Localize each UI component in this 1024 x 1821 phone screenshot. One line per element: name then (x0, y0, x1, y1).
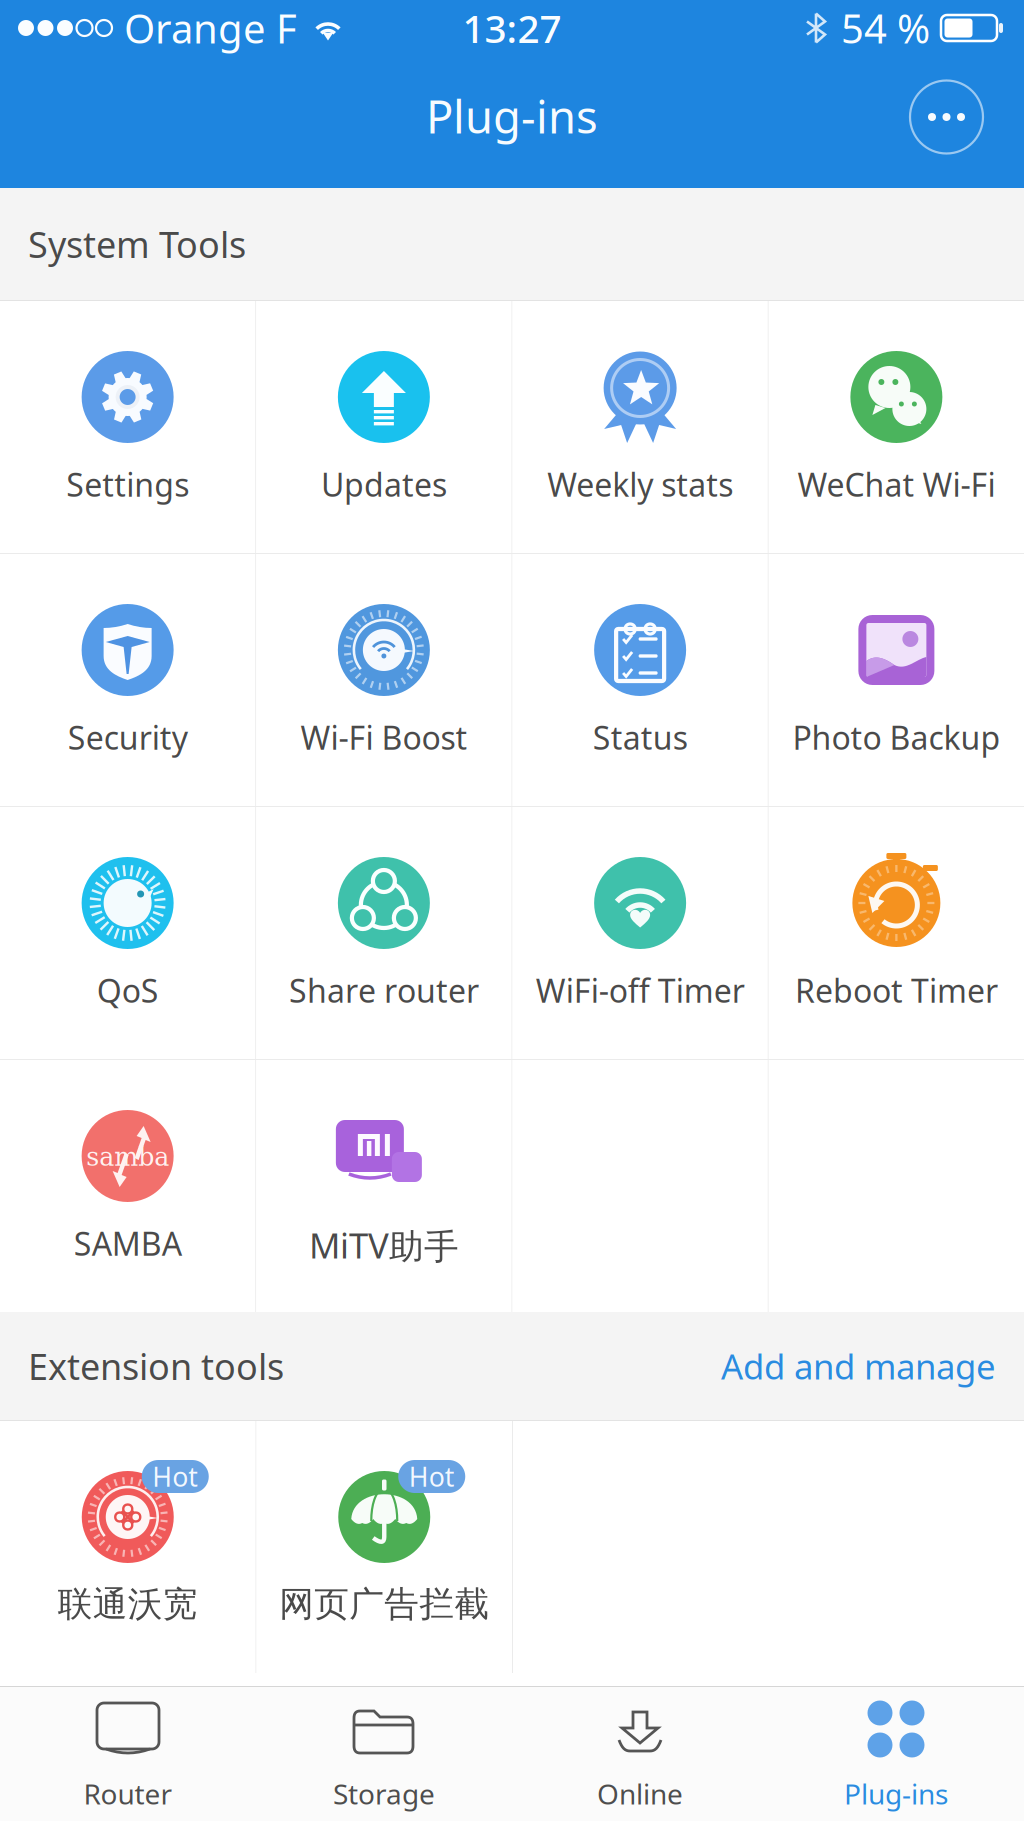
button[interactable]: Weekly stats (512, 301, 768, 553)
staticText: Orange F (124, 1, 297, 54)
button[interactable]: Hot (0, 1421, 255, 1673)
staticText: samba (86, 1142, 169, 1172)
staticText: Storage (333, 1775, 435, 1812)
button[interactable]: Online (512, 1686, 768, 1821)
button[interactable]: More options (902, 77, 991, 166)
staticText: 联通沃宽 (58, 1583, 198, 1626)
staticText: 网页广告拦截 (279, 1583, 489, 1626)
staticText: Settings (66, 463, 189, 505)
button[interactable]: Add and manage (721, 1343, 996, 1389)
staticText: Status (593, 716, 688, 758)
staticText: 54 % (841, 1, 930, 54)
staticText: Hot (409, 1459, 455, 1494)
staticText: Share router (289, 969, 479, 1011)
staticText: MiTV助手 (309, 1222, 459, 1268)
button[interactable]: Hot (256, 1421, 512, 1673)
staticText: WiFi-off Timer (536, 969, 745, 1011)
button[interactable]: Plug-ins (768, 1686, 1024, 1821)
staticText: Online (597, 1775, 683, 1812)
staticText: WeChat Wi-Fi (797, 463, 995, 505)
staticText: Hot (152, 1459, 198, 1494)
staticText: Weekly stats (547, 463, 733, 505)
button[interactable]: QoS (0, 807, 255, 1059)
staticText: Add and manage (721, 1343, 996, 1389)
button[interactable]: Settings (0, 301, 255, 553)
button[interactable]: Storage (256, 1686, 512, 1821)
button[interactable]: Photo Backup (769, 554, 1024, 806)
staticText: SAMBA (74, 1222, 182, 1264)
staticText: Plug-ins (426, 86, 598, 146)
button[interactable]: Reboot Timer (769, 807, 1024, 1059)
staticText: 13:27 (462, 2, 561, 54)
staticText: QoS (97, 969, 159, 1011)
staticText: System Tools (28, 220, 246, 268)
button[interactable]: Status (512, 554, 768, 806)
button[interactable]: Share router (256, 807, 511, 1059)
staticText: Reboot Timer (795, 969, 998, 1011)
button[interactable]: WeChat Wi-Fi (769, 301, 1024, 553)
button[interactable]: Wi-Fi Boost (256, 554, 511, 806)
staticText: Router (83, 1775, 172, 1812)
button[interactable]: WiFi-off Timer (512, 807, 768, 1059)
button[interactable]: Updates (256, 301, 511, 553)
button[interactable]: samba (0, 1060, 255, 1312)
staticText: Extension tools (28, 1342, 284, 1390)
staticText: Security (68, 716, 188, 758)
staticText: Photo Backup (792, 716, 1000, 758)
button[interactable]: MiTV助手 (256, 1060, 511, 1312)
button[interactable]: Security (0, 554, 255, 806)
staticText: Updates (321, 463, 447, 505)
staticText: Wi-Fi Boost (300, 716, 467, 758)
staticText: Plug-ins (844, 1775, 948, 1812)
button[interactable]: Router (0, 1686, 256, 1821)
